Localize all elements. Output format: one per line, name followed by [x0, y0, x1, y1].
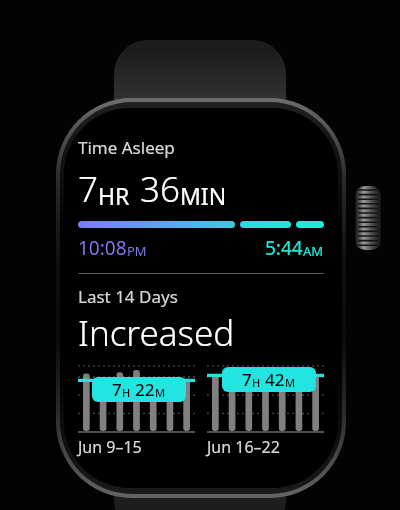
- staticText: Jun 9–15: [78, 436, 142, 458]
- staticText: Last 14 Days: [78, 285, 178, 308]
- staticText: Increased: [78, 309, 235, 357]
- staticText: 42: [265, 368, 285, 391]
- staticText: 7: [112, 378, 122, 401]
- button[interactable]: 7: [207, 363, 324, 433]
- staticText: AM: [303, 242, 324, 260]
- staticText: PM: [127, 242, 147, 260]
- staticText: H: [252, 375, 261, 390]
- staticText: 22: [135, 378, 155, 401]
- button[interactable]: Digital Crown: [355, 186, 381, 250]
- staticText: H: [122, 385, 131, 400]
- staticText: 5:44: [265, 235, 303, 261]
- staticText: 10:08: [78, 235, 127, 261]
- staticText: 36: [140, 165, 180, 213]
- staticText: Time Asleep: [78, 136, 175, 159]
- staticText: M: [155, 385, 166, 400]
- staticText: 7: [78, 165, 98, 213]
- staticText: Jun 16–22: [207, 436, 280, 458]
- button[interactable]: 7: [78, 363, 195, 433]
- staticText: HR: [98, 180, 130, 211]
- staticText: MIN: [180, 180, 227, 211]
- staticText: 7: [242, 368, 252, 391]
- staticText: M: [285, 375, 296, 390]
